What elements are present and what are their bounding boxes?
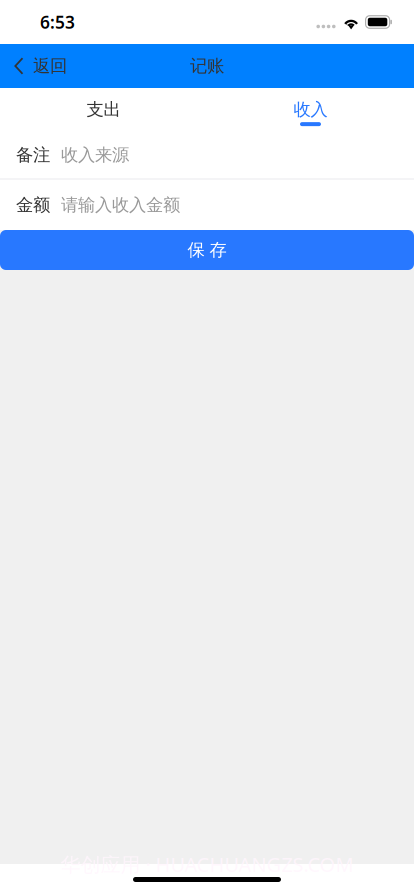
staticText: 华创应用 · HUACHUANGZS.COM <box>60 851 353 878</box>
button[interactable]: 收入 <box>207 88 414 132</box>
button[interactable]: 保 存 <box>0 230 414 270</box>
staticText: 请输入收入金额 <box>61 194 180 216</box>
staticText: 收入来源 <box>61 144 129 166</box>
staticText: 保 存 <box>187 239 226 261</box>
staticText: 6:53 <box>40 10 75 33</box>
staticText: 收入 <box>293 99 327 120</box>
staticText: 返回 <box>33 55 67 77</box>
staticText: 金额 <box>16 194 50 216</box>
staticText: 支出 <box>86 99 120 120</box>
button[interactable]: 支出 <box>0 88 207 132</box>
button[interactable]: 金额 <box>0 180 414 230</box>
button[interactable]: 返回 <box>0 44 79 88</box>
staticText: 备注 <box>16 144 50 166</box>
button[interactable]: 备注 <box>0 132 414 178</box>
staticText: 记账 <box>190 55 224 77</box>
